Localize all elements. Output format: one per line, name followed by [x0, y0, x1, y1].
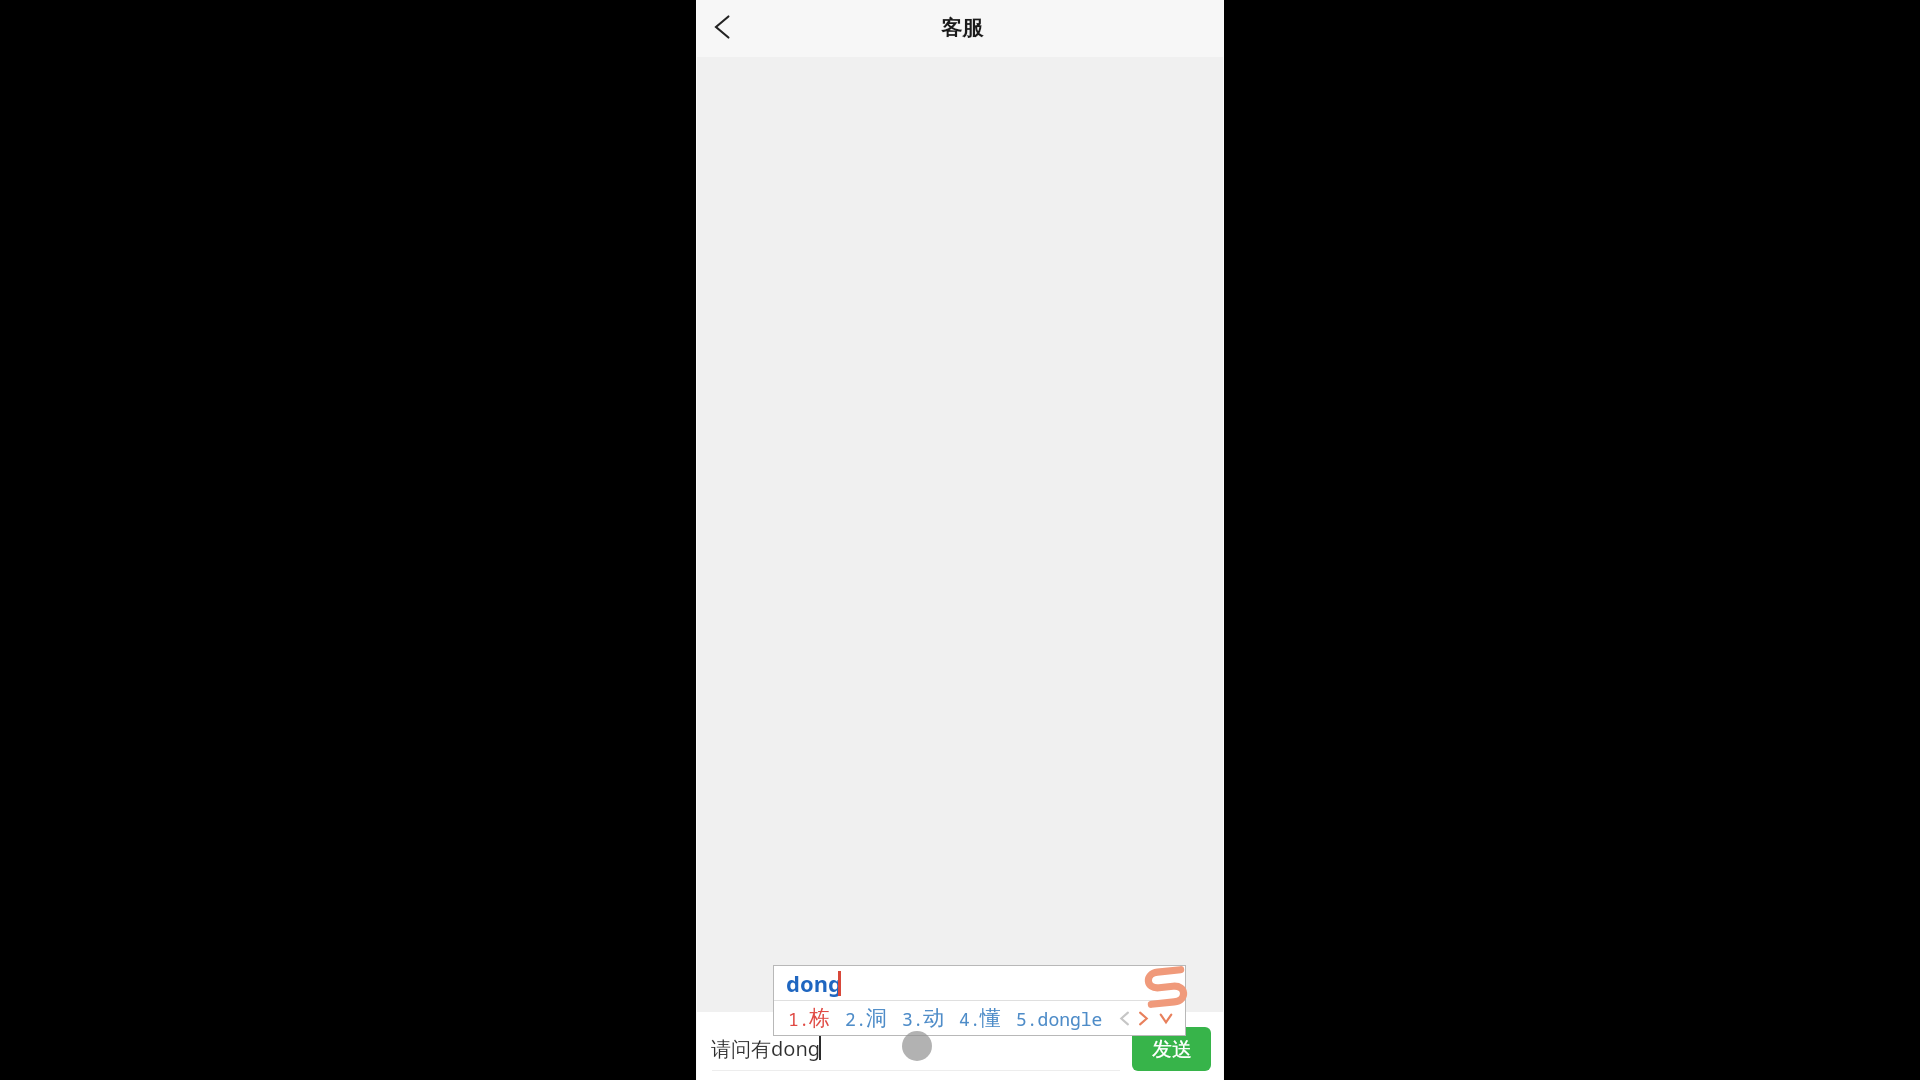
button[interactable]: 5.dongle: [1016, 1001, 1106, 1036]
button[interactable]: 3.: [902, 1001, 944, 1036]
staticText: 发送: [1152, 1037, 1192, 1062]
staticText: 动: [923, 1005, 944, 1031]
button[interactable]: 4.: [959, 1001, 1001, 1036]
staticText: 5.dongle: [1016, 1007, 1103, 1032]
button[interactable]: Back: [696, 0, 742, 55]
staticText: 懂: [980, 1005, 1001, 1031]
button[interactable]: Previous candidates: [1115, 1001, 1133, 1036]
staticText: 客服: [941, 15, 983, 41]
staticText: 栋: [809, 1005, 830, 1031]
button[interactable]: 2.: [845, 1001, 887, 1036]
button[interactable]: 发送: [1132, 1027, 1211, 1071]
staticText: 4.: [959, 1007, 981, 1032]
staticText: 3.: [902, 1007, 924, 1032]
staticText: 请问有dong: [711, 1035, 821, 1062]
staticText: dong: [786, 968, 842, 998]
button[interactable]: More candidates: [1134, 1001, 1152, 1036]
staticText: 1.: [788, 1007, 810, 1032]
button[interactable]: Message input: [706, 1018, 1126, 1074]
button[interactable]: Expand candidate list: [1157, 1001, 1175, 1036]
staticText: 洞: [866, 1005, 887, 1031]
button[interactable]: 1.: [788, 1001, 830, 1036]
staticText: 2.: [845, 1007, 867, 1032]
